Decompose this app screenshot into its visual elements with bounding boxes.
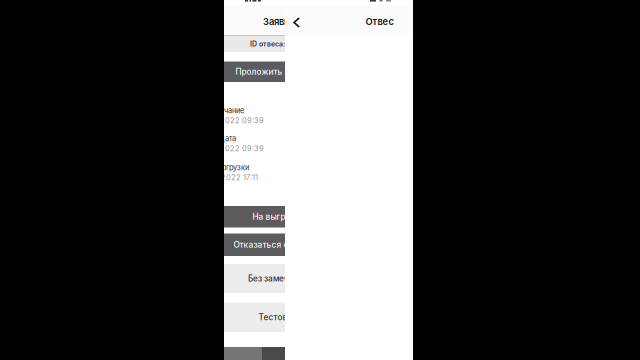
button[interactable]: Back	[285, 5, 309, 35]
button[interactable]: Проложить маршрут	[184, 61, 373, 82]
staticText: Факт. дата	[199, 134, 236, 143]
staticText: Заявка	[263, 16, 294, 27]
button[interactable]: Отказаться от заявки	[184, 233, 373, 256]
button[interactable]: Без замечаний	[184, 264, 373, 293]
staticText: 04.10.2022 17:11	[199, 173, 258, 182]
button[interactable]: Отвесы	[262, 347, 373, 360]
button[interactable]: Тестовый	[184, 302, 373, 332]
staticText: ID отвеса: 10142	[250, 40, 307, 48]
staticText: Примечание	[199, 106, 244, 115]
staticText: Тестовый	[258, 312, 298, 322]
staticText: Без замечаний	[248, 273, 309, 283]
staticText: Дата погрузки	[199, 163, 249, 172]
staticText: 05.10.2022 09:39	[199, 144, 264, 153]
staticText: Отказаться от заявки	[233, 240, 323, 250]
staticText: Проложить маршрут	[235, 67, 321, 77]
button[interactable]: На выгрузку	[184, 206, 373, 227]
staticText: Отвес	[365, 16, 393, 27]
staticText: На выгрузку	[252, 212, 304, 222]
staticText: 05.10.2022 09:39	[199, 116, 264, 125]
